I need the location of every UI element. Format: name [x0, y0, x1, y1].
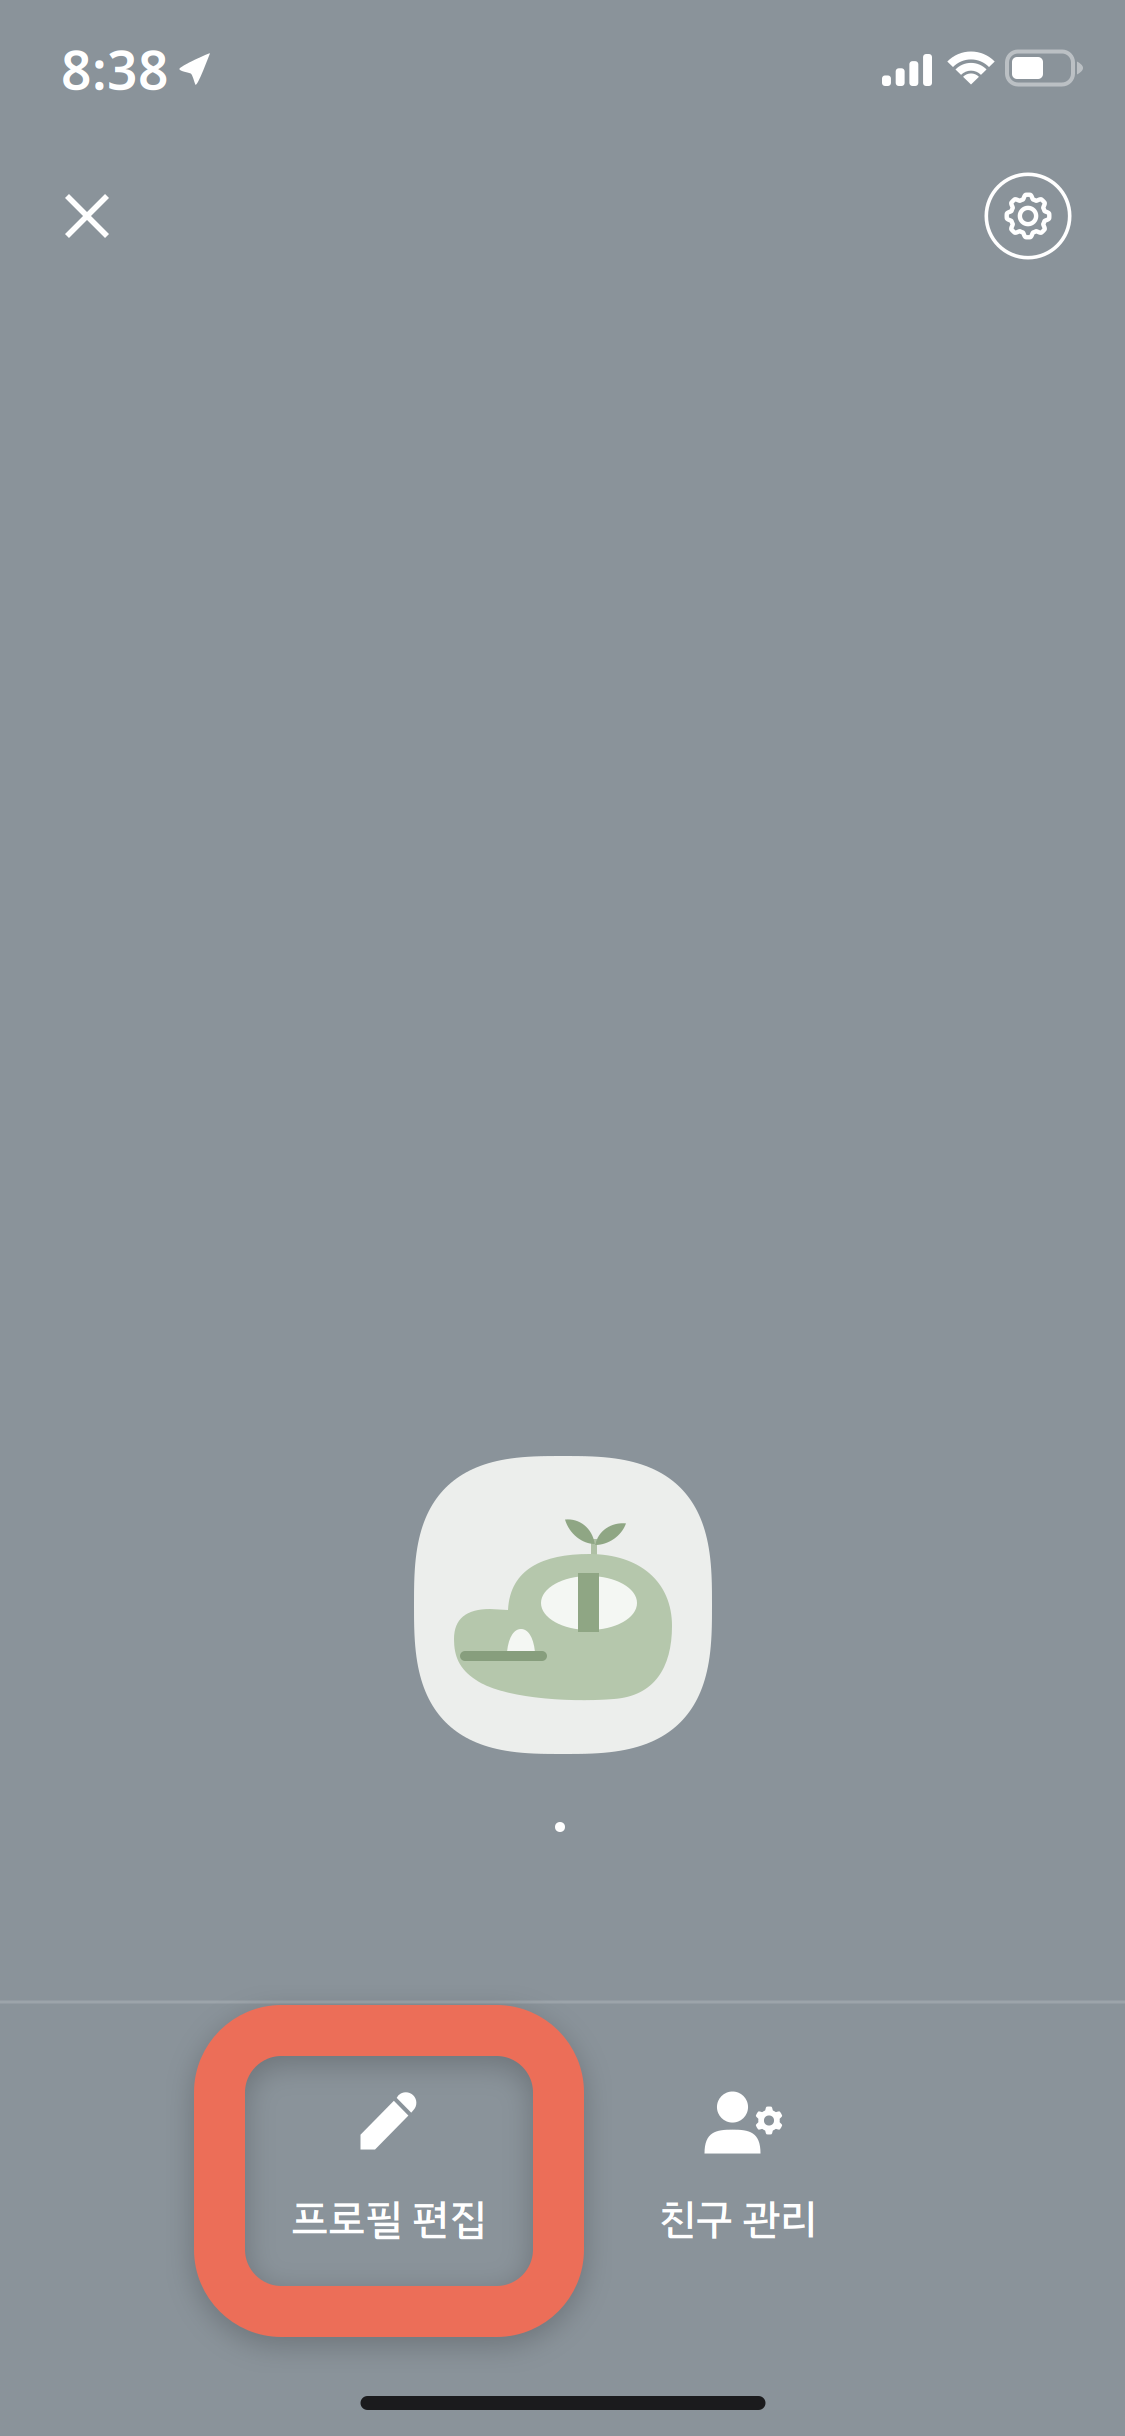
button[interactable]: 친구 관리: [593, 2053, 883, 2286]
staticText: 8:38: [61, 34, 169, 104]
button[interactable]: Close: [35, 164, 139, 268]
button[interactable]: Settings: [976, 164, 1080, 268]
staticText: 친구 관리: [659, 2188, 817, 2250]
button[interactable]: 프로필 편집: [244, 2053, 534, 2286]
staticText: 프로필 편집: [291, 2188, 486, 2250]
